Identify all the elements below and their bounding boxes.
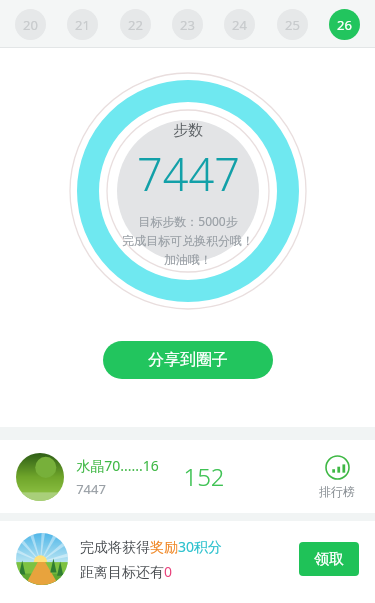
staticText: 20	[23, 16, 38, 34]
staticText: 加油哦！	[164, 252, 212, 267]
staticText: 152	[183, 460, 225, 493]
staticText: 21	[75, 16, 90, 34]
button[interactable]: 排行榜	[315, 451, 359, 503]
staticText: 26	[337, 16, 352, 34]
staticText: 7447	[137, 143, 240, 204]
staticText: 距离目标还有0	[80, 562, 173, 581]
button[interactable]: 分享到圈子	[103, 341, 273, 379]
button[interactable]: 领取	[299, 542, 359, 576]
staticText: 24	[232, 16, 247, 34]
button[interactable]: 26	[329, 9, 360, 40]
staticText: 完成目标可兑换积分哦！	[122, 233, 254, 248]
button[interactable]: 21	[67, 9, 98, 40]
staticText: 步数	[173, 121, 203, 140]
button[interactable]: 20	[15, 9, 46, 40]
staticText: 水晶70......16	[76, 456, 159, 475]
staticText: 排行榜	[319, 484, 355, 499]
staticText: 25	[285, 16, 300, 34]
button[interactable]: 22	[120, 9, 151, 40]
button[interactable]: 24	[224, 9, 255, 40]
staticText: 23	[180, 16, 195, 34]
button[interactable]: 水晶70......16	[0, 440, 375, 513]
staticText: 22	[128, 16, 143, 34]
staticText: 领取	[314, 550, 344, 569]
button[interactable]: 23	[172, 9, 203, 40]
staticText: 分享到圈子	[148, 350, 228, 370]
staticText: 7447	[76, 480, 106, 498]
button[interactable]: 25	[277, 9, 308, 40]
staticText: 完成将获得奖励30积分	[80, 537, 223, 556]
staticText: 目标步数：5000步	[138, 213, 238, 229]
